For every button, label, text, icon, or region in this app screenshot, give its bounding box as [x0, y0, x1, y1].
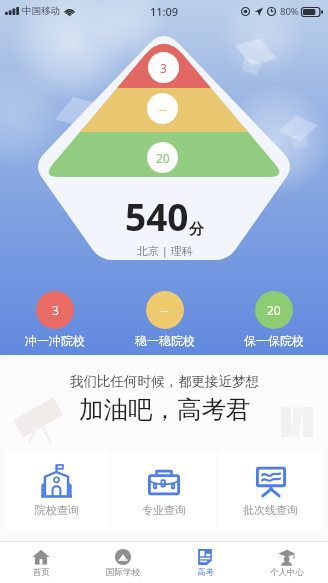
- staticText: --: [161, 302, 169, 318]
- staticText: 保一保院校: [244, 333, 304, 348]
- staticText: 院校查询: [35, 503, 79, 517]
- button[interactable]: 国际学校: [82, 542, 164, 583]
- staticText: 冲一冲院校: [25, 333, 85, 348]
- button[interactable]: 20: [219, 289, 328, 350]
- staticText: 高考: [197, 567, 214, 578]
- staticText: 专业查询: [142, 503, 186, 517]
- staticText: 11:09: [150, 4, 179, 19]
- staticText: 中国移动: [22, 5, 60, 17]
- button[interactable]: 首页: [0, 542, 82, 583]
- button[interactable]: 院校查询: [5, 450, 109, 530]
- staticText: 80%: [280, 5, 299, 18]
- staticText: 20: [267, 302, 281, 318]
- staticText: 3: [52, 302, 59, 318]
- button[interactable]: 高考: [164, 542, 246, 583]
- staticText: 批次线查询: [243, 503, 298, 517]
- staticText: --: [159, 101, 167, 117]
- button[interactable]: 批次线查询: [218, 450, 323, 530]
- staticText: 20: [156, 150, 170, 166]
- button[interactable]: 个人中心: [246, 542, 328, 583]
- button[interactable]: --: [110, 289, 219, 350]
- staticText: 稳一稳院校: [135, 333, 195, 348]
- staticText: 国际学校: [106, 567, 140, 578]
- staticText: 540: [125, 191, 189, 241]
- staticText: 北京 | 理科: [137, 243, 193, 258]
- staticText: 我们比任何时候，都更接近梦想: [70, 373, 259, 390]
- button[interactable]: 3: [0, 289, 110, 350]
- staticText: 加油吧，高考君: [79, 394, 251, 425]
- staticText: 3: [160, 60, 167, 76]
- staticText: 分: [189, 220, 204, 239]
- button[interactable]: 专业查询: [111, 450, 216, 530]
- staticText: 首页: [33, 567, 50, 578]
- staticText: 个人中心: [270, 567, 304, 578]
